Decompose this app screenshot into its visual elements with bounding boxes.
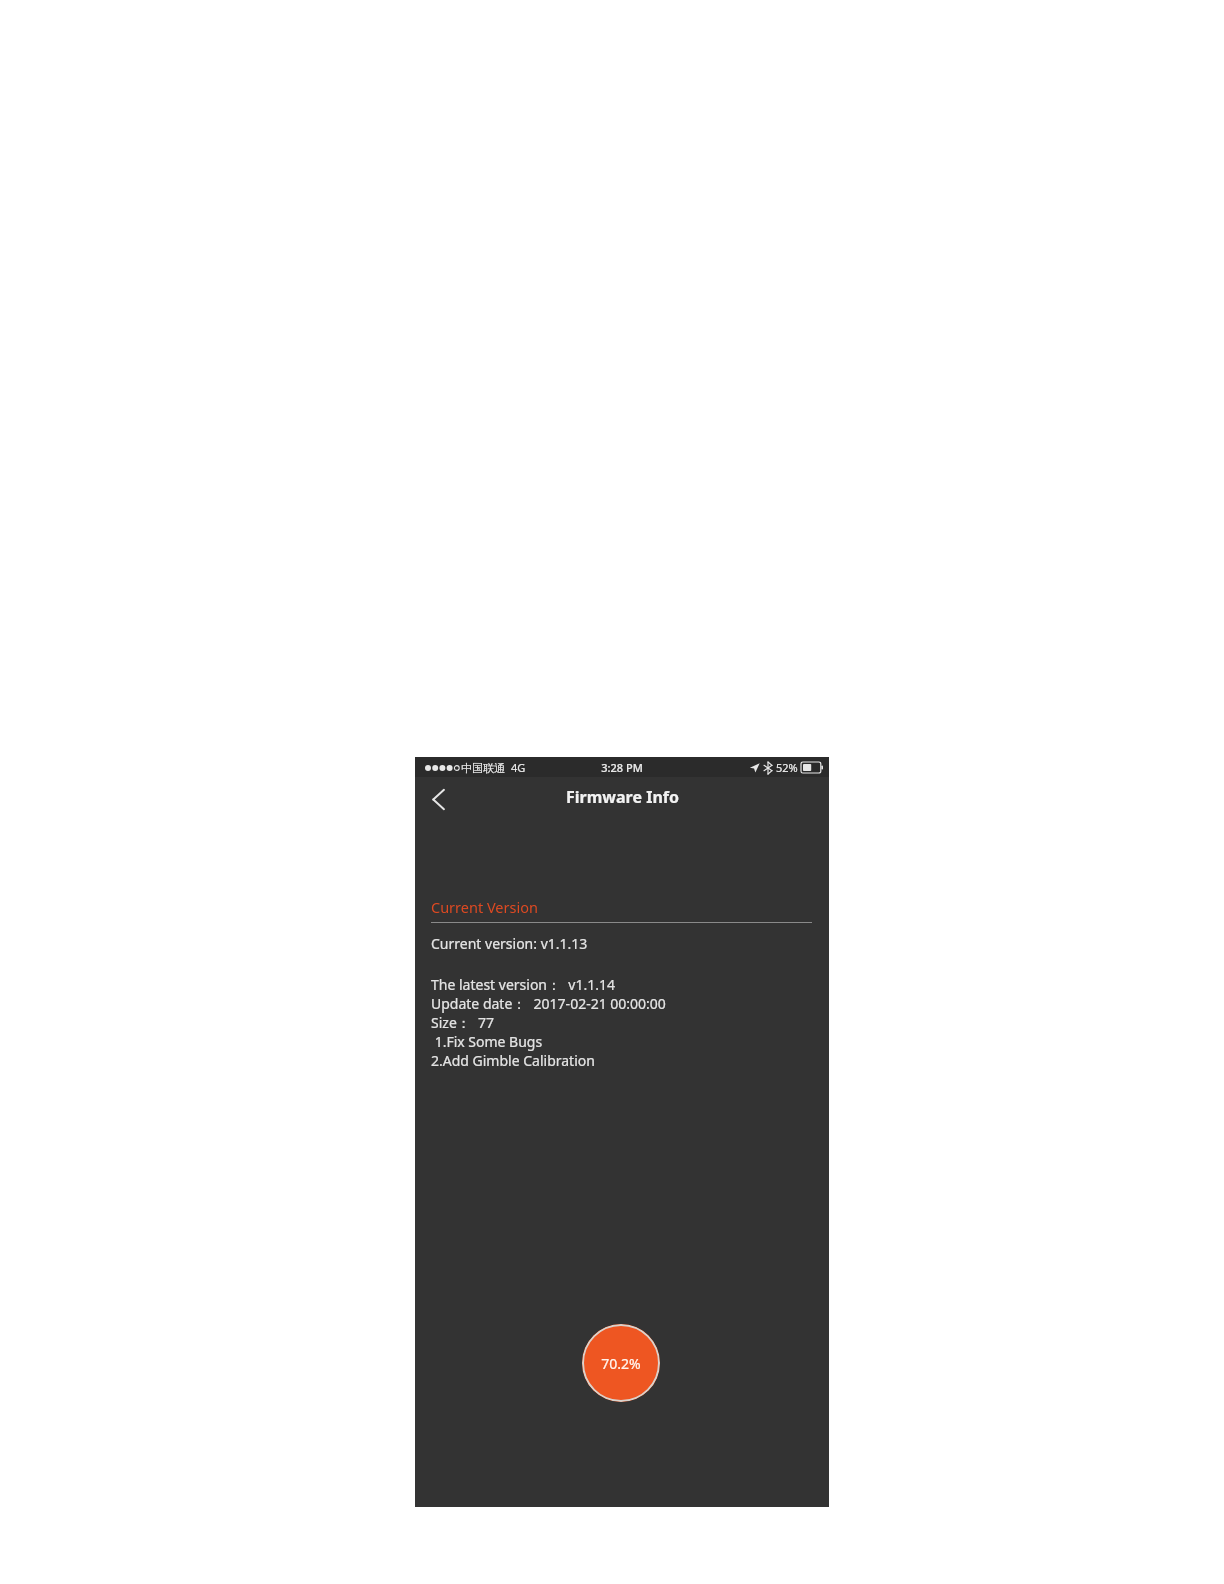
- staticText: 3:28 PM: [601, 760, 643, 775]
- staticText: Size： 77: [431, 1013, 495, 1032]
- staticText: Current Version: [431, 897, 538, 917]
- staticText: Current version: v1.1.13: [431, 934, 588, 953]
- staticText: 中国联通: [461, 761, 505, 775]
- staticText: 2.Add Gimble Calibration: [431, 1051, 595, 1070]
- staticText: Update date： 2017-02-21 00:00:00: [431, 994, 666, 1013]
- button[interactable]: Back: [415, 777, 461, 821]
- staticText: 1.Fix Some Bugs: [431, 1032, 543, 1051]
- staticText: Firmware Info: [566, 786, 679, 808]
- staticText: 70.2%: [601, 1354, 641, 1373]
- staticText: 52%: [776, 760, 798, 775]
- staticText: 4G: [511, 760, 526, 775]
- staticText: The latest version： v1.1.14: [431, 975, 615, 994]
- button[interactable]: 70.2%: [582, 1324, 660, 1402]
